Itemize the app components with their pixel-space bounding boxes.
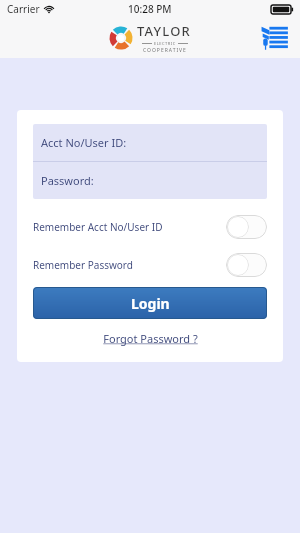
staticText: Carrier xyxy=(7,2,40,16)
staticText: TAYLOR xyxy=(137,22,192,40)
staticText: ELECTRIC xyxy=(154,41,176,46)
staticText: 10:28 PM xyxy=(128,2,172,16)
staticText: COOPERATIVE xyxy=(143,47,187,54)
button[interactable]: Password: xyxy=(33,162,267,199)
staticText: Acct No/User ID: xyxy=(41,135,127,150)
staticText: Password: xyxy=(41,173,94,188)
button[interactable]: Menu xyxy=(258,21,292,55)
button[interactable]: Remember Password xyxy=(33,253,267,277)
staticText: Login xyxy=(131,294,170,313)
button[interactable]: Forgot Password ? xyxy=(103,331,198,346)
button[interactable]: Acct No/User ID: xyxy=(33,124,267,161)
staticText: Remember Password xyxy=(33,258,133,272)
staticText: Remember Acct No/User ID xyxy=(33,220,163,234)
button[interactable]: Login xyxy=(33,287,267,319)
button[interactable]: Remember Acct No/User ID xyxy=(33,215,267,239)
other: Toggle off xyxy=(226,253,267,277)
staticText: Forgot Password ? xyxy=(103,331,198,346)
other: Toggle off xyxy=(226,215,267,239)
